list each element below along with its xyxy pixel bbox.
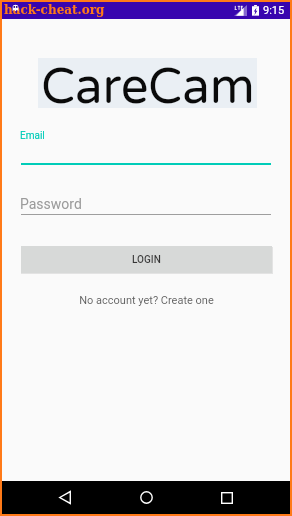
staticText: LOGIN	[132, 254, 161, 266]
staticText: CareCam	[41, 58, 255, 108]
button[interactable]: Back	[49, 489, 81, 506]
button[interactable]: Recent apps	[211, 489, 243, 506]
button[interactable]: LOGIN	[21, 246, 272, 273]
staticText: Email	[20, 130, 45, 142]
staticText: No account yet? Create one	[79, 294, 214, 307]
staticText: Password	[20, 196, 82, 212]
button[interactable]: No account yet? Create one	[2, 289, 290, 311]
staticText: 9:15	[263, 4, 285, 17]
button[interactable]: Home	[130, 489, 162, 506]
staticText: hack-cheat.org	[4, 3, 105, 17]
